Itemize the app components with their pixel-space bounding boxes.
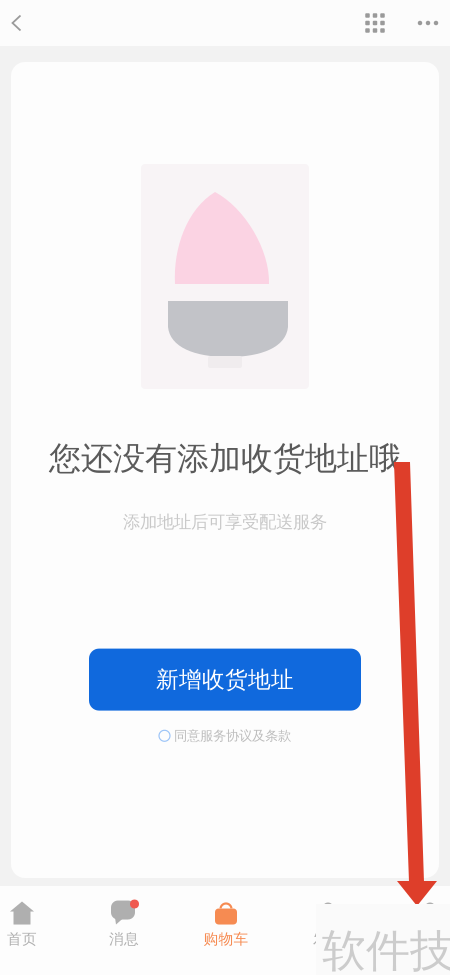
button[interactable]: 同意服务协议及条款	[159, 728, 291, 744]
button[interactable]: 发现	[277, 886, 379, 948]
button[interactable]: More	[407, 0, 449, 46]
button[interactable]: 消息	[73, 886, 175, 948]
button[interactable]: 首页	[0, 886, 73, 948]
staticText: 购物车	[203, 930, 248, 948]
staticText: 您还没有添加收货地址哦	[49, 439, 401, 478]
button[interactable]: 新增收货地址	[89, 649, 361, 711]
staticText: 发现	[313, 930, 343, 948]
staticText: 添加地址后可享受配送服务	[123, 511, 327, 533]
staticText: 软件技巧	[322, 924, 450, 975]
staticText: 首页	[7, 930, 37, 948]
staticText: 我的	[415, 930, 445, 948]
button[interactable]: 购物车	[175, 886, 277, 948]
staticText: 同意服务协议及条款	[174, 728, 291, 744]
button[interactable]: Back	[0, 0, 34, 46]
staticText: 消息	[109, 930, 139, 948]
button[interactable]: 我的	[379, 886, 450, 948]
button[interactable]: Apps	[343, 0, 407, 46]
staticText: 新增收货地址	[156, 666, 294, 693]
